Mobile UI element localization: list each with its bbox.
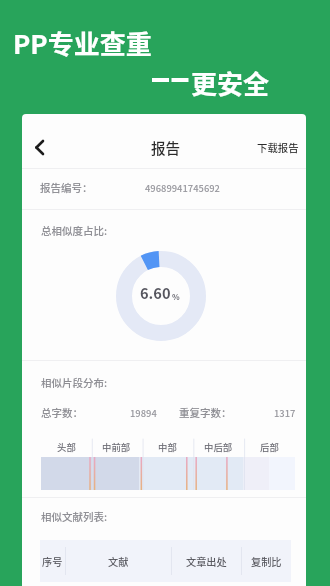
staticText: 中部 xyxy=(158,440,177,454)
staticText: 头部 xyxy=(57,440,76,454)
staticText: 49689941745692 xyxy=(145,181,220,195)
staticText: 中前部 xyxy=(102,440,131,454)
staticText: 更安全 xyxy=(191,64,270,102)
staticText: 1317 xyxy=(274,406,296,420)
staticText: 报告编号： xyxy=(40,180,93,195)
staticText: 相似文献列表: xyxy=(41,509,108,524)
button[interactable]: Back xyxy=(22,132,57,162)
staticText: PP专业查重 xyxy=(13,24,152,62)
staticText: 文章出处 xyxy=(186,554,227,569)
staticText: 相似片段分布: xyxy=(41,375,108,390)
button[interactable]: 下载报告 xyxy=(253,137,302,157)
staticText: 19894 xyxy=(130,406,157,420)
staticText: 下载报告 xyxy=(257,140,299,155)
staticText: 重复字数： xyxy=(179,405,232,420)
staticText: % xyxy=(172,291,180,303)
staticText: 6.60 xyxy=(140,282,171,303)
staticText: 总字数： xyxy=(41,405,83,420)
staticText: 文献 xyxy=(108,554,129,569)
staticText: 后部 xyxy=(260,440,279,454)
staticText: 报告 xyxy=(151,137,181,158)
staticText: 序号 xyxy=(42,554,63,569)
staticText: 中后部 xyxy=(204,440,233,454)
staticText: 复制比 xyxy=(251,554,282,569)
staticText: 总相似度占比: xyxy=(41,223,108,238)
